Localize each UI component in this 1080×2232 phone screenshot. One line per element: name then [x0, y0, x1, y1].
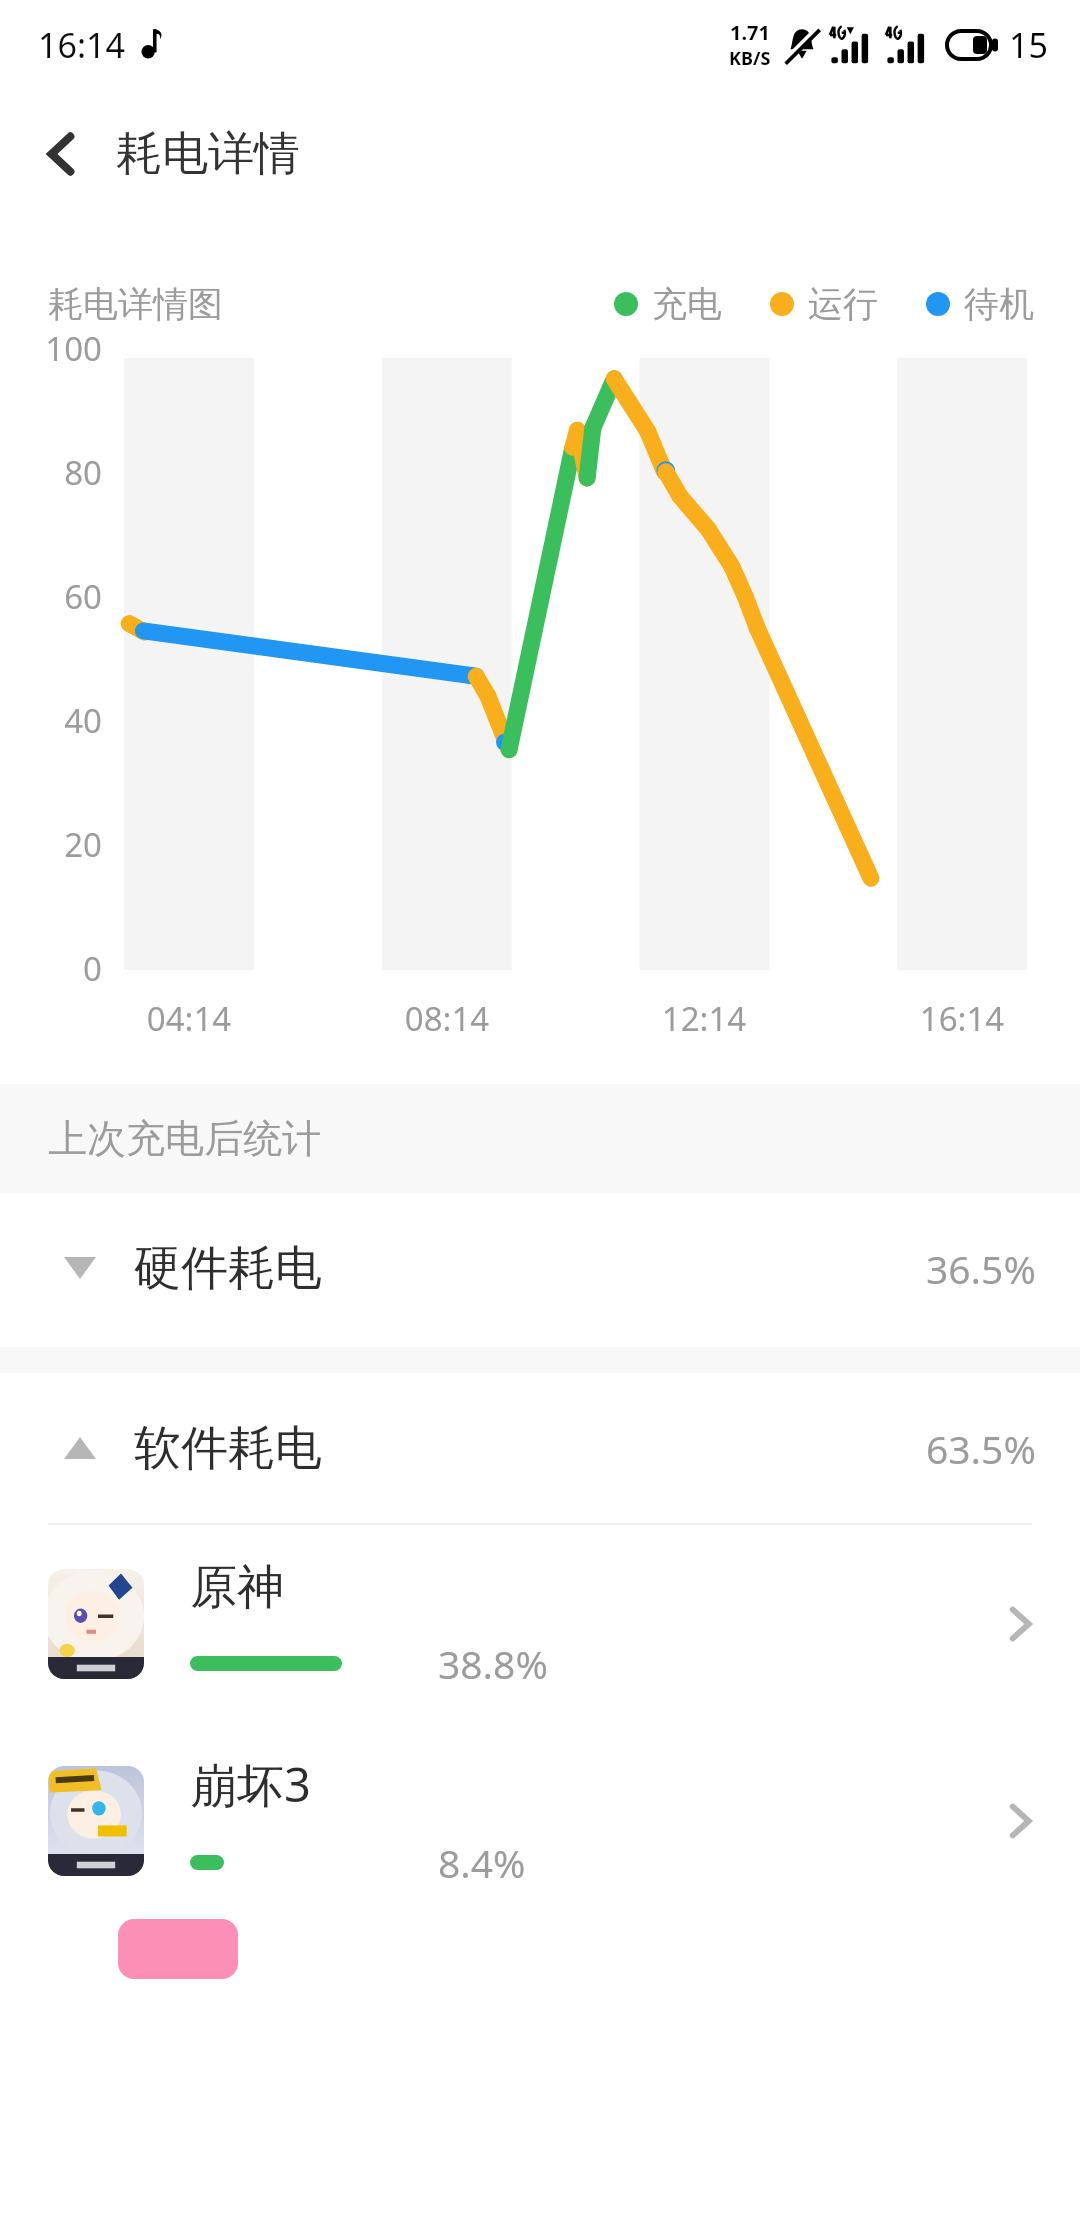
staticText: 12:14 [604, 996, 804, 1041]
staticText: 耗电详情图 [48, 282, 223, 326]
staticText: 100 [6, 326, 102, 371]
staticText: 0 [6, 946, 102, 991]
staticText: 20 [6, 822, 102, 867]
staticText: 63.5% [926, 1422, 1036, 1475]
button[interactable]: 软件耗电 [0, 1373, 1080, 1523]
staticText: 充电 [652, 282, 722, 326]
staticText: 38.8% [438, 1637, 548, 1690]
staticText: 原神 [190, 1558, 284, 1617]
button[interactable]: 运行 [770, 282, 878, 326]
button[interactable]: 硬件耗电 [0, 1193, 1080, 1343]
other: Open app detail [1002, 1606, 1038, 1642]
staticText: KB/S [729, 46, 771, 71]
staticText: 耗电详情 [116, 125, 300, 183]
button[interactable]: Back [18, 110, 106, 198]
staticText: 16:14 [862, 996, 1062, 1041]
button[interactable] [0, 1919, 1080, 1979]
staticText: 36.5% [926, 1242, 1036, 1295]
staticText: 80 [6, 450, 102, 495]
staticText: 40 [6, 698, 102, 743]
button[interactable]: 崩坏3 [0, 1722, 1080, 1919]
staticText: 16:14 [38, 22, 125, 68]
staticText: 8.4% [438, 1836, 526, 1889]
other: Open app detail [1002, 1803, 1038, 1839]
staticText: 15 [1009, 22, 1048, 68]
staticText: 运行 [808, 282, 878, 326]
staticText: 60 [6, 574, 102, 619]
button[interactable]: 充电 [614, 282, 722, 326]
staticText: 崩坏3 [190, 1752, 311, 1816]
staticText: 1.71 [730, 19, 770, 46]
staticText: 上次充电后统计 [48, 1114, 321, 1163]
staticText: 04:14 [89, 996, 289, 1041]
staticText: 待机 [964, 282, 1034, 326]
staticText: 硬件耗电 [134, 1239, 322, 1298]
staticText: 软件耗电 [134, 1419, 322, 1478]
staticText: 08:14 [347, 996, 547, 1041]
button[interactable]: 待机 [926, 282, 1034, 326]
button[interactable]: 原神 [0, 1525, 1080, 1722]
